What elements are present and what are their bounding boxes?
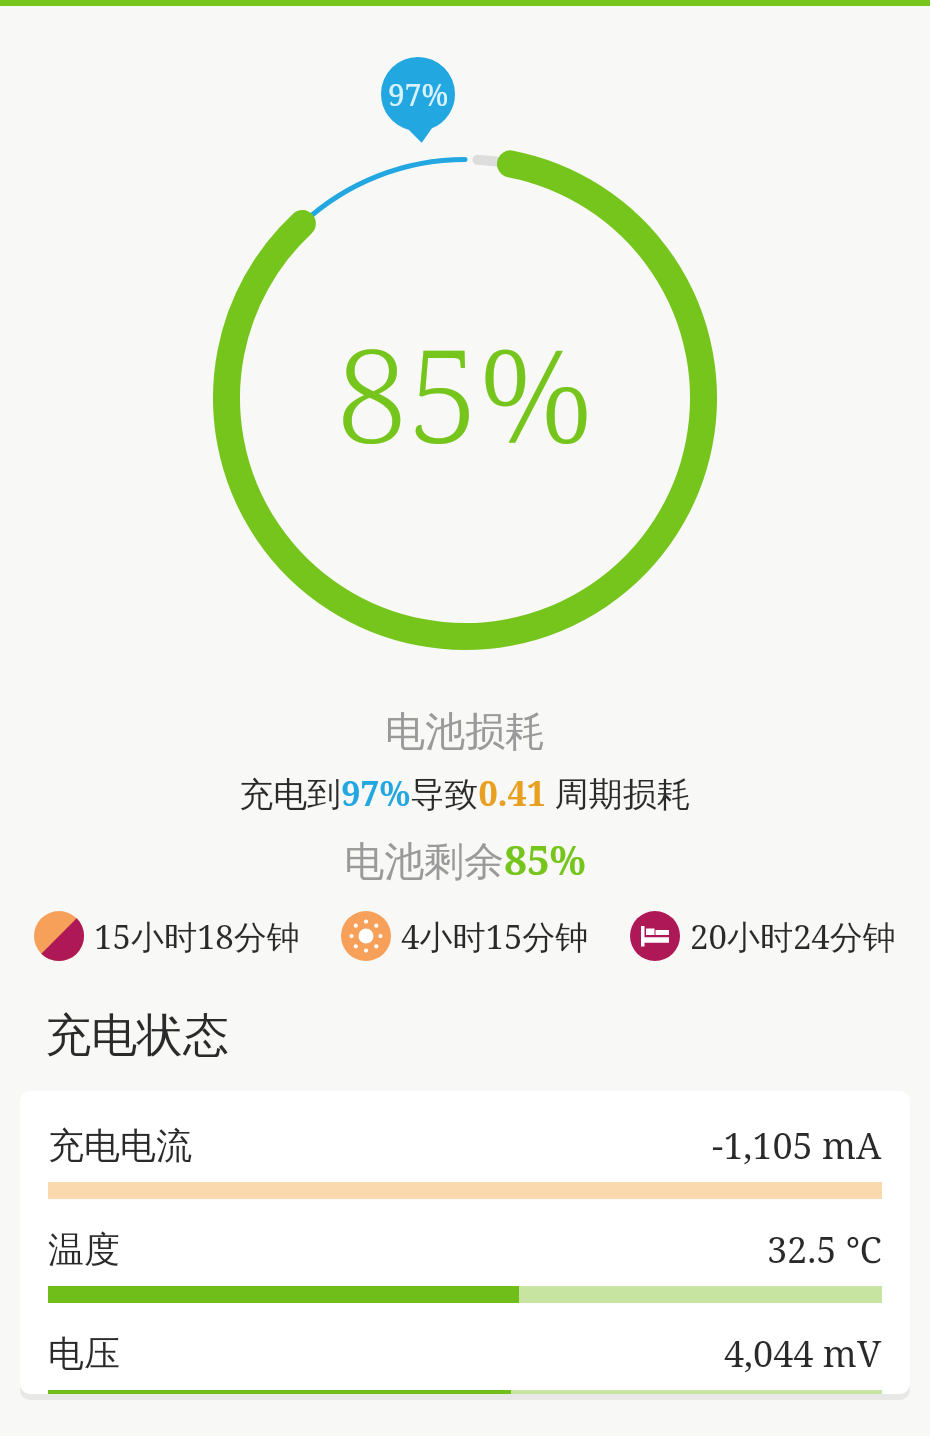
button[interactable]: 4小时15分钟 bbox=[341, 911, 589, 961]
staticText: 4小时15分钟 bbox=[401, 914, 589, 959]
staticText: 充电电流 bbox=[48, 1123, 192, 1168]
staticText: 充电到97%导致0.41 周期损耗 bbox=[239, 770, 691, 816]
staticText: 32.5 ℃ bbox=[767, 1225, 882, 1274]
staticText: 电压 bbox=[48, 1331, 120, 1376]
staticText: 20小时24分钟 bbox=[690, 914, 896, 959]
button[interactable]: 15小时18分钟 bbox=[34, 911, 300, 961]
button[interactable]: 温度 bbox=[48, 1225, 882, 1303]
staticText: -1,105 mA bbox=[712, 1121, 882, 1170]
button[interactable]: 20小时24分钟 bbox=[630, 911, 896, 961]
other: 20小时24分钟 bbox=[630, 911, 680, 961]
staticText: 电池剩余85% bbox=[344, 832, 586, 887]
other: 4小时15分钟 bbox=[341, 911, 391, 961]
staticText: 电池损耗 bbox=[385, 706, 545, 756]
staticText: 4,044 mV bbox=[724, 1329, 882, 1378]
staticText: 充电状态 bbox=[45, 1007, 229, 1065]
button[interactable]: 充电电流 bbox=[48, 1121, 882, 1199]
staticText: 97% bbox=[388, 74, 449, 115]
other: 15小时18分钟 bbox=[34, 911, 84, 961]
staticText: 温度 bbox=[48, 1227, 120, 1272]
button[interactable]: 电压 bbox=[48, 1329, 882, 1394]
staticText: 15小时18分钟 bbox=[94, 914, 300, 959]
staticText: 85% bbox=[336, 306, 594, 480]
